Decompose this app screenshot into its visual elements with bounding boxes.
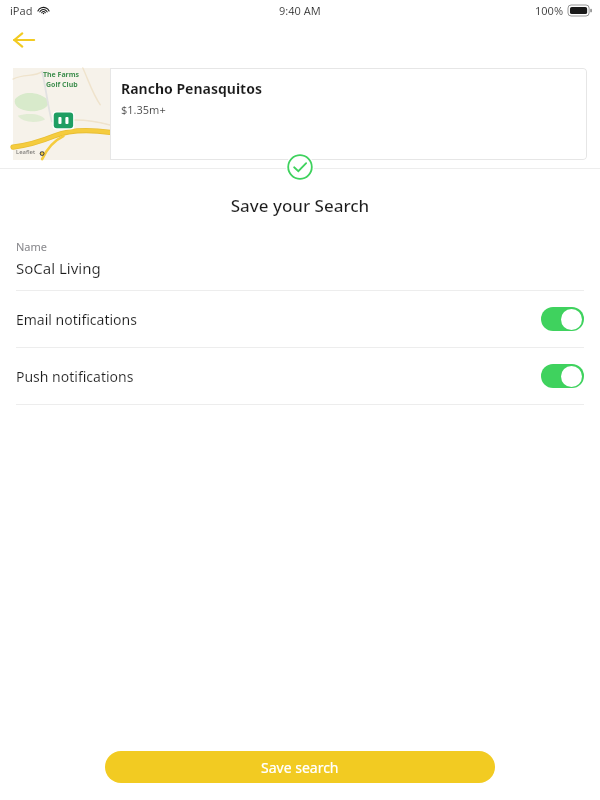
staticText: Leaflet: [16, 148, 36, 156]
button[interactable]: Save search: [105, 751, 495, 783]
staticText: 100%: [535, 3, 564, 18]
button[interactable]: The Farms: [13, 68, 587, 160]
staticText: The Farms: [43, 70, 80, 80]
staticText: Save your Search: [0, 194, 600, 217]
staticText: 9:40 AM: [279, 3, 321, 18]
staticText: SoCal Living: [16, 258, 101, 278]
button[interactable]: Email notifications: [0, 291, 600, 347]
staticText: Name: [16, 239, 48, 254]
staticText: iPad: [10, 3, 33, 18]
button[interactable]: Push notifications: [0, 348, 600, 404]
staticText: Email notifications: [16, 310, 137, 329]
staticText: Push notifications: [16, 367, 134, 386]
staticText: Save search: [261, 758, 339, 777]
button[interactable]: Back: [6, 22, 42, 58]
staticText: Rancho Penasquitos: [121, 79, 262, 98]
staticText: $1.35m+: [121, 102, 166, 117]
staticText: Golf Club: [46, 80, 78, 90]
